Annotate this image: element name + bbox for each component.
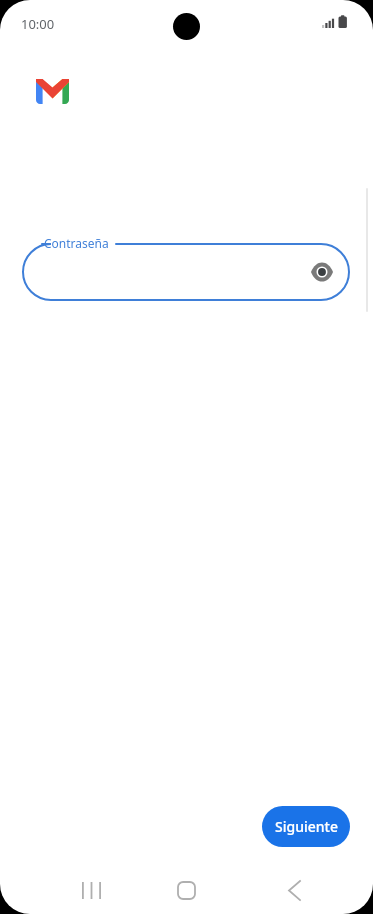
button[interactable]: Siguiente xyxy=(262,806,350,847)
button[interactable]: Atrás xyxy=(266,866,322,914)
staticText: 10:00 xyxy=(21,15,55,33)
button[interactable]: Contraseña xyxy=(22,243,350,301)
button[interactable]: Recientes xyxy=(63,866,119,914)
button[interactable]: Mostrar contraseña xyxy=(302,252,342,292)
staticText: Siguiente xyxy=(275,817,338,836)
staticText: Contraseña xyxy=(44,235,109,251)
button[interactable]: Inicio xyxy=(158,866,214,914)
